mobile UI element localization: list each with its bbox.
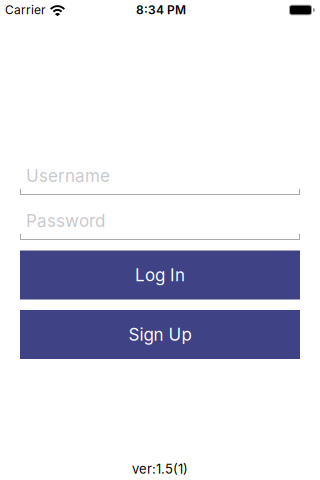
staticText: 8:34 PM <box>136 3 186 17</box>
button[interactable]: Password <box>20 208 300 240</box>
button[interactable]: Sign Up <box>20 310 300 359</box>
staticText: Carrier <box>5 3 46 17</box>
button[interactable]: Username <box>20 163 300 195</box>
staticText: ver:1.5(1) <box>132 461 188 477</box>
staticText: Username <box>26 165 110 186</box>
staticText: Password <box>26 210 105 231</box>
button[interactable]: Log In <box>20 250 300 299</box>
staticText: Log In <box>135 265 185 285</box>
staticText: Sign Up <box>128 324 191 345</box>
